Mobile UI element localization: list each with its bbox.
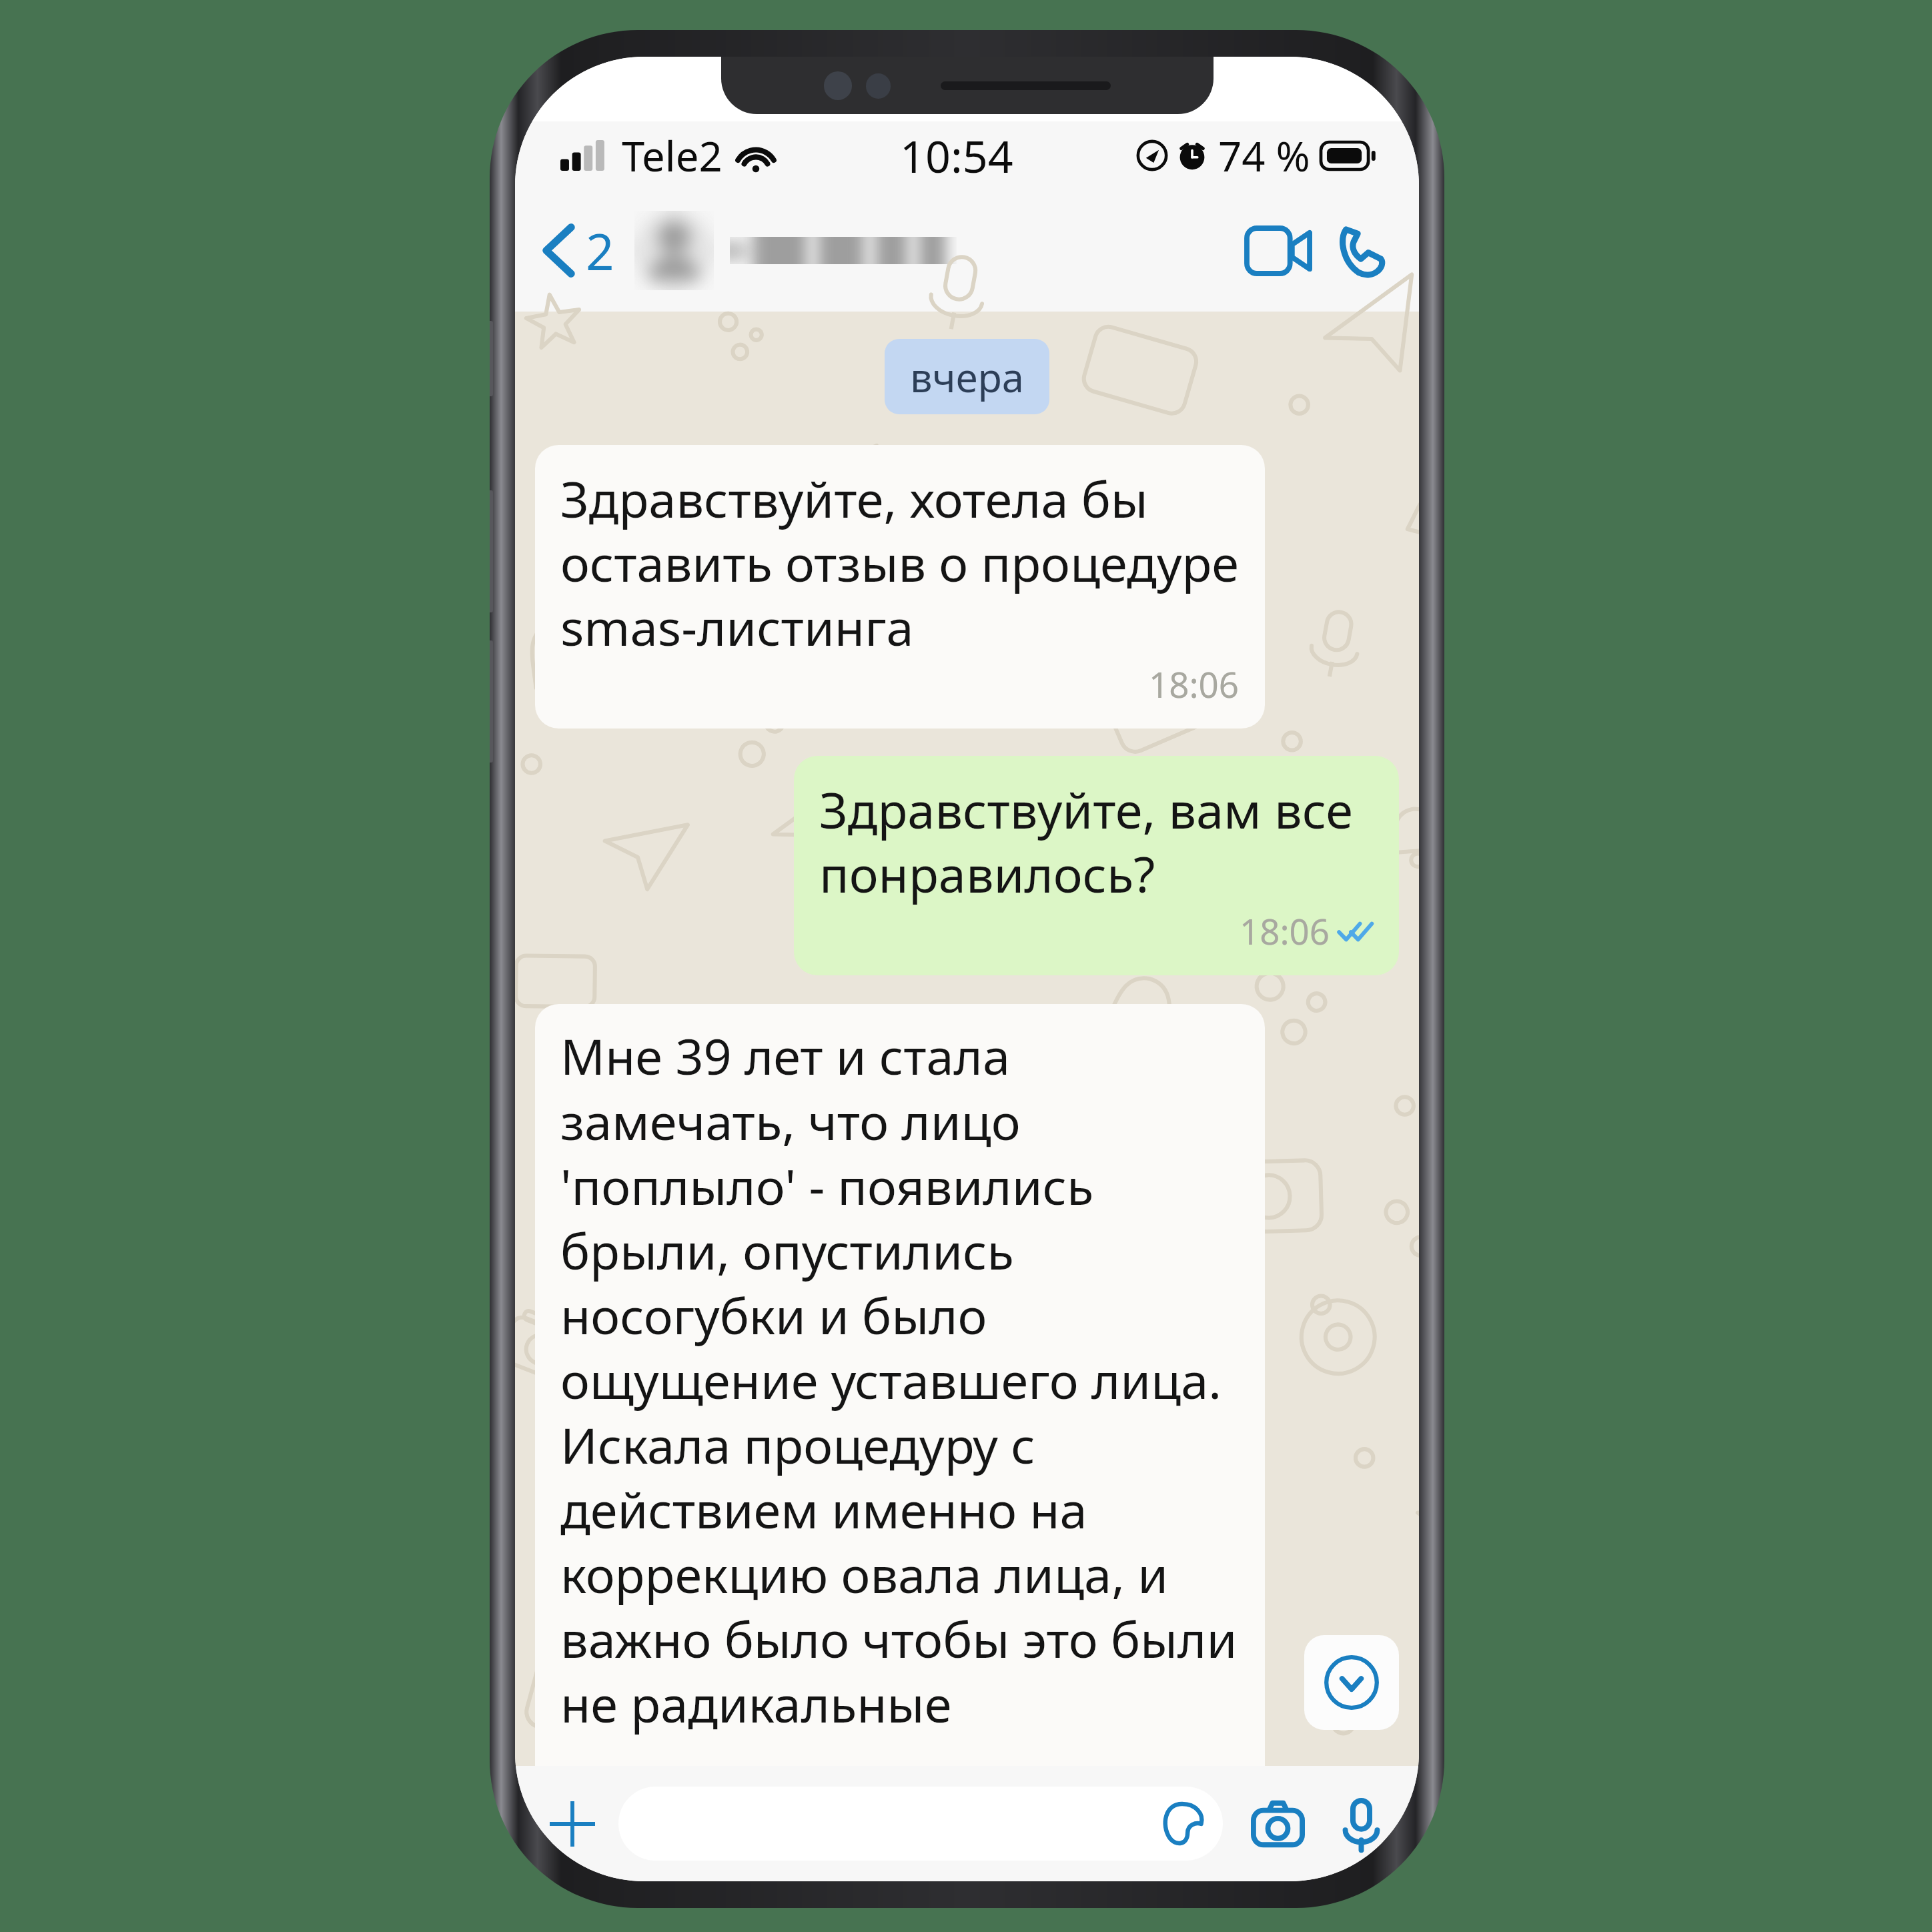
button[interactable]: Voice message: [1328, 1791, 1394, 1857]
button[interactable]: Stickers: [1159, 1801, 1205, 1847]
button[interactable]: Здравствуйте, хотела бы оставить отзыв о…: [535, 445, 1265, 729]
staticText: 18:06: [1149, 660, 1240, 708]
staticText: Здравствуйте, хотела бы оставить отзыв о…: [560, 465, 1240, 660]
button[interactable]: вчера: [910, 350, 1024, 404]
button[interactable]: Scroll to bottom: [1304, 1635, 1399, 1730]
staticText: Tele2: [622, 127, 722, 183]
button[interactable]: Video call: [1247, 189, 1312, 312]
staticText: Здравствуйте, вам все понравилось?: [819, 776, 1374, 907]
button[interactable]: Attach: [540, 1792, 604, 1855]
staticText: 10:54: [900, 125, 1013, 185]
button[interactable]: Мне 39 лет и стала замечать, что лицо 'п…: [535, 1004, 1265, 1766]
button[interactable]: Back: [542, 189, 614, 312]
staticText: 74 %: [1218, 127, 1310, 183]
button[interactable]: Voice call: [1336, 189, 1388, 312]
staticText: 18:06: [1240, 907, 1330, 955]
button[interactable]: Camera: [1245, 1791, 1310, 1857]
button[interactable]: Здравствуйте, вам все понравилось?: [794, 756, 1399, 975]
button[interactable]: [625, 189, 1227, 312]
button[interactable]: Stickers: [618, 1787, 1223, 1861]
staticText: 2: [586, 217, 614, 285]
staticText: Мне 39 лет и стала замечать, что лицо 'п…: [560, 1022, 1240, 1748]
staticText: вчера: [910, 350, 1024, 404]
